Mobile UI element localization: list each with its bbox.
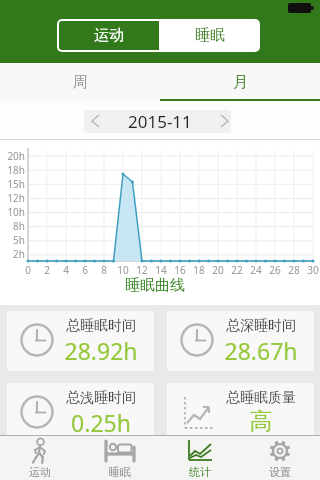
staticText: 睡眠	[195, 26, 225, 45]
button[interactable]: 运动	[59, 21, 159, 50]
staticText: 总深睡时间	[215, 317, 307, 335]
staticText: 5h	[0, 233, 25, 247]
button[interactable]: 周	[0, 63, 160, 101]
staticText: 统计	[189, 465, 211, 479]
staticText: 28.92h	[55, 335, 147, 366]
button[interactable]: 总睡眠时间	[7, 311, 154, 371]
staticText: 26	[266, 263, 284, 277]
button[interactable]: 月	[160, 63, 320, 101]
staticText: 总浅睡时间	[55, 389, 147, 407]
staticText: 15h	[0, 177, 25, 191]
staticText: 28	[285, 263, 303, 277]
staticText: 20h	[0, 149, 25, 163]
staticText: 设置	[269, 465, 291, 479]
staticText: 睡眠	[109, 465, 131, 479]
button[interactable]: 统计	[160, 437, 240, 480]
button[interactable]: 睡眠	[80, 437, 160, 480]
staticText: 12	[133, 263, 151, 277]
staticText: 6	[76, 263, 94, 277]
staticText: 总睡眠质量	[215, 389, 307, 407]
staticText: 0.25h	[55, 407, 147, 438]
staticText: 2	[38, 263, 56, 277]
staticText: 14	[152, 263, 170, 277]
staticText: 10h	[0, 205, 25, 219]
staticText: 20	[209, 263, 227, 277]
staticText: 周	[73, 73, 88, 92]
staticText: 2h	[0, 247, 25, 261]
staticText: 总睡眠时间	[55, 317, 147, 335]
button[interactable]: 睡眠	[159, 19, 260, 52]
staticText: 16	[171, 263, 189, 277]
staticText: 22	[228, 263, 246, 277]
staticText: 18	[190, 263, 208, 277]
staticText: 高	[215, 407, 307, 436]
staticText: 30	[304, 263, 320, 277]
staticText: 2015-11	[128, 110, 192, 133]
staticText: 睡眠曲线	[95, 276, 215, 295]
staticText: 18h	[0, 163, 25, 177]
button[interactable]: 总浅睡时间	[7, 383, 154, 443]
button[interactable]	[78, 106, 112, 136]
staticText: 0	[19, 263, 37, 277]
button[interactable]: 总深睡时间	[167, 311, 314, 371]
staticText: 24	[247, 263, 265, 277]
staticText: 8	[95, 263, 113, 277]
button[interactable]	[208, 106, 242, 136]
button[interactable]: 总睡眠质量	[167, 383, 314, 443]
staticText: 12h	[0, 191, 25, 205]
button[interactable]: 设置	[240, 437, 320, 480]
staticText: 4	[57, 263, 75, 277]
staticText: 8h	[0, 219, 25, 233]
staticText: 月	[233, 73, 248, 92]
staticText: 28.67h	[215, 335, 307, 366]
staticText: 运动	[94, 26, 124, 45]
staticText: 10	[114, 263, 132, 277]
staticText: 运动	[29, 465, 51, 479]
button[interactable]: 运动	[0, 437, 80, 480]
